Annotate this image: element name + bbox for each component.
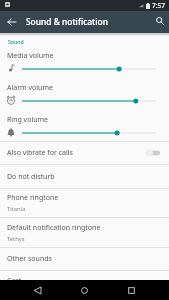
staticText: Also vibrate for calls	[7, 148, 73, 158]
button[interactable]: Other sounds	[0, 248, 169, 270]
button[interactable]: Do not disturb	[0, 165, 169, 188]
button[interactable]: Back	[23, 280, 51, 300]
button[interactable]: Phone ringtone	[0, 189, 169, 217]
staticText: Other sounds	[7, 254, 52, 264]
staticText: Titania	[7, 205, 26, 213]
staticText: Default notification ringtone	[7, 223, 101, 233]
staticText: Do not disturb	[7, 172, 55, 182]
staticText: Sound & notification	[26, 16, 108, 27]
staticText: Phone ringtone	[7, 193, 59, 203]
staticText: Media volume	[7, 51, 54, 61]
staticText: Ring volume	[7, 115, 49, 125]
button[interactable]: Search	[148, 11, 169, 33]
staticText: Cast	[7, 276, 22, 280]
button[interactable]: Alarm volume	[0, 81, 169, 113]
button[interactable]: Home	[70, 280, 98, 300]
button[interactable]: Recents	[117, 280, 145, 300]
staticText: 7:57	[152, 1, 166, 10]
staticText: Alarm volume	[7, 83, 53, 93]
staticText: Sound	[8, 38, 24, 45]
button[interactable]: Cast	[0, 271, 169, 280]
button[interactable]: Ring volume	[0, 113, 169, 141]
button[interactable]: Back	[0, 11, 23, 33]
button[interactable]: Media volume	[0, 49, 169, 81]
button[interactable]: Default notification ringtone	[0, 218, 169, 247]
staticText: Tethys	[7, 235, 25, 243]
button[interactable]: Also vibrate for calls	[0, 142, 169, 164]
